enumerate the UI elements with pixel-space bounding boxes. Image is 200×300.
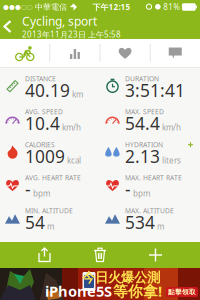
staticText: 81% [163,2,180,12]
button[interactable]: Heart rate [100,39,150,66]
button[interactable]: Notes [150,39,200,66]
staticText: 2.13 [125,145,160,168]
button[interactable]: Charts [50,39,100,66]
staticText: km/h [62,122,81,133]
staticText: 點擊領取 [168,288,196,296]
staticText: 54.4 [125,112,160,135]
staticText: MAX. HEART RATE [125,173,182,182]
staticText: iPhone5S [45,281,112,300]
staticText: 3:51:41 [125,79,185,102]
staticText: 中華電信 [33,2,69,12]
staticText: 1009 [25,145,65,168]
button[interactable]: Back [0,14,22,39]
staticText: km [72,89,83,100]
staticText: 534 [125,211,155,234]
staticText: 40.19 [25,79,70,102]
button[interactable]: Delete [89,243,111,267]
button[interactable]: Advertisement [0,268,200,300]
staticText: 下午12:15 [92,2,130,12]
staticText: DISTANCE [25,74,56,83]
staticText: ●●● [3,3,21,11]
staticText: HYDRATION [125,140,163,149]
staticText: - [125,178,131,201]
button[interactable]: Share [33,243,56,267]
staticText: MIN. ALTITUDE [25,206,73,215]
staticText: bpm [133,188,150,199]
staticText: m [157,221,164,232]
staticText: bpm [33,188,50,199]
staticText: - [25,178,31,201]
button[interactable]: Add [144,243,167,266]
staticText: 54 [25,211,45,234]
staticText: DURATION [125,74,159,83]
staticText: m [47,221,54,232]
staticText: 今日火爆公測 [82,269,160,286]
staticText: CALORIES [25,140,55,149]
staticText: ○○ [21,3,33,11]
staticText: liters [162,155,181,166]
button[interactable]: Activity [0,39,49,66]
staticText: kcal [67,155,81,166]
staticText: 2013年11月23日 上午5:58 [22,29,121,40]
staticText: Cycling, sport [22,13,97,29]
staticText: km/h [162,122,181,133]
button[interactable]: Claim [166,287,198,297]
staticText: MAX. ALTITUDE [125,206,174,215]
staticText: MAX. SPEED [125,107,164,116]
staticText: AVG. SPEED [25,107,63,116]
staticText: AVG. HEART RATE [25,173,81,182]
staticText: 等你拿! [113,281,162,300]
staticText: 10.4 [25,112,60,135]
